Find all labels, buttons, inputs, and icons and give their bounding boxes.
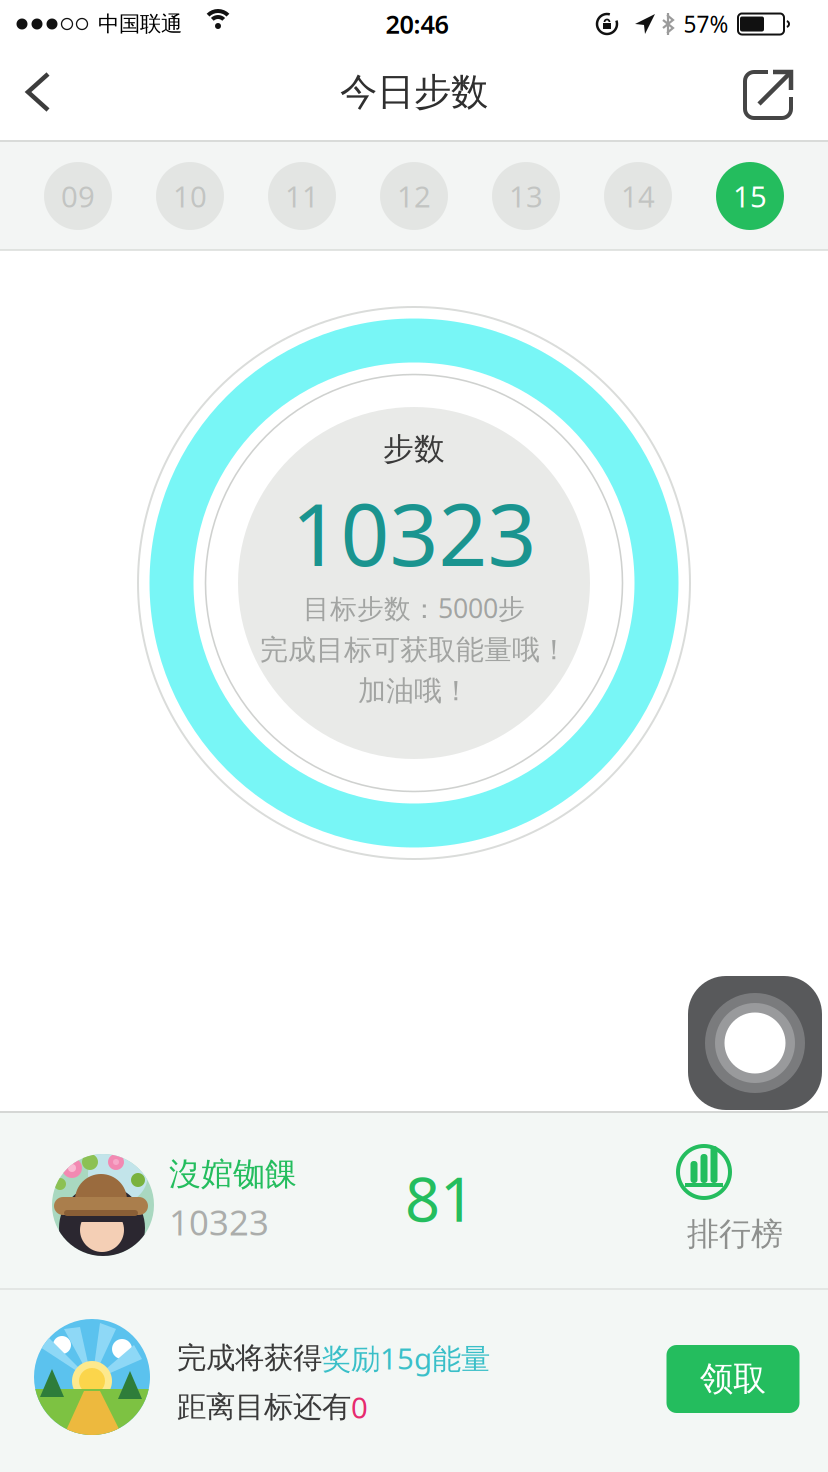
staticText: 领取 <box>700 1358 766 1399</box>
staticText: 目标步数：5000步 <box>303 590 525 626</box>
staticText: 中国联通 <box>98 11 182 37</box>
staticText: 81 <box>405 1157 475 1239</box>
staticText: 步数 <box>383 430 445 468</box>
button[interactable] <box>743 64 799 120</box>
staticText: 11 <box>285 176 319 215</box>
button[interactable]: 15 <box>716 162 784 230</box>
staticText: 完成将获得 <box>177 1340 322 1376</box>
staticText: 0 <box>351 1387 368 1426</box>
staticText: 排行榜 <box>687 1214 783 1254</box>
staticText: 加油哦！ <box>358 674 470 708</box>
staticText: 57% <box>683 9 728 39</box>
button[interactable]: 领取 <box>666 1345 799 1413</box>
button[interactable]: 12 <box>380 162 448 230</box>
button[interactable] <box>52 1154 154 1256</box>
staticText: 10 <box>173 176 207 215</box>
button[interactable] <box>688 976 822 1110</box>
button[interactable]: 11 <box>268 162 336 230</box>
staticText: 10323 <box>291 476 536 590</box>
staticText: 奖励15g能量 <box>322 1338 490 1377</box>
staticText: 20:46 <box>385 7 448 41</box>
staticText: 距离目标还有 <box>177 1389 351 1425</box>
staticText: 14 <box>621 176 655 215</box>
button[interactable]: 13 <box>492 162 560 230</box>
button[interactable]: 14 <box>604 162 672 230</box>
staticText: 09 <box>61 176 95 215</box>
staticText: 10323 <box>169 1199 269 1245</box>
staticText: 13 <box>509 176 543 215</box>
button[interactable]: 排行榜 <box>580 1120 780 1280</box>
staticText: 完成目标可获取能量哦！ <box>260 633 568 667</box>
button[interactable] <box>24 70 64 114</box>
staticText: 沒婠铷餜 <box>169 1154 297 1194</box>
button[interactable]: 09 <box>44 162 112 230</box>
button[interactable]: 10 <box>156 162 224 230</box>
staticText: 今日步数 <box>340 69 488 115</box>
staticText: 15 <box>733 176 767 215</box>
button[interactable] <box>34 1319 150 1435</box>
staticText: 12 <box>397 176 431 215</box>
